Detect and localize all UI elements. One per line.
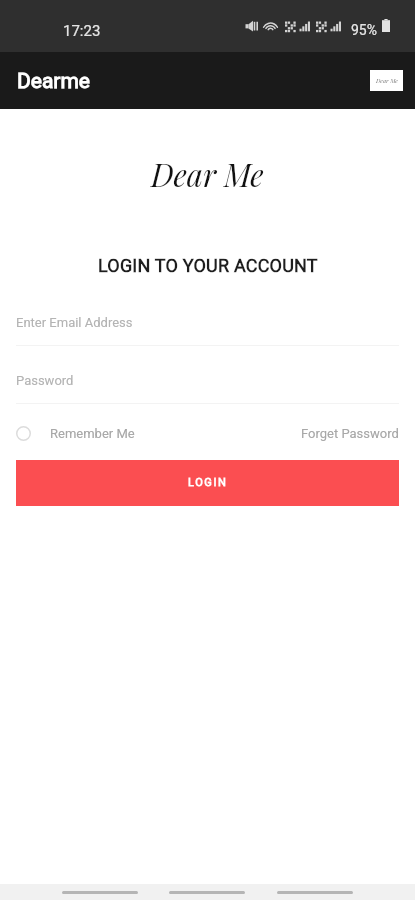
- staticText: LOGIN TO YOUR ACCOUNT: [98, 255, 318, 276]
- staticText: 95%: [351, 22, 377, 38]
- staticText: Remember Me: [50, 426, 135, 441]
- button[interactable]: Dear Me logo: [370, 70, 403, 91]
- button[interactable]: Navigation button: [62, 891, 138, 894]
- staticText: Dear Me: [376, 77, 398, 85]
- button[interactable]: Remember Me: [16, 426, 141, 441]
- staticText: Dearme: [17, 69, 91, 94]
- staticText: Dear Me: [151, 153, 264, 194]
- staticText: 17:23: [63, 22, 101, 40]
- button[interactable]: Forget Password: [301, 426, 399, 441]
- staticText: Password: [16, 373, 74, 388]
- button[interactable]: LOGIN: [16, 460, 399, 506]
- staticText: Enter Email Address: [16, 315, 133, 330]
- staticText: LOGIN: [188, 476, 228, 489]
- button[interactable]: Navigation button: [169, 891, 245, 894]
- button[interactable]: Navigation button: [277, 891, 353, 894]
